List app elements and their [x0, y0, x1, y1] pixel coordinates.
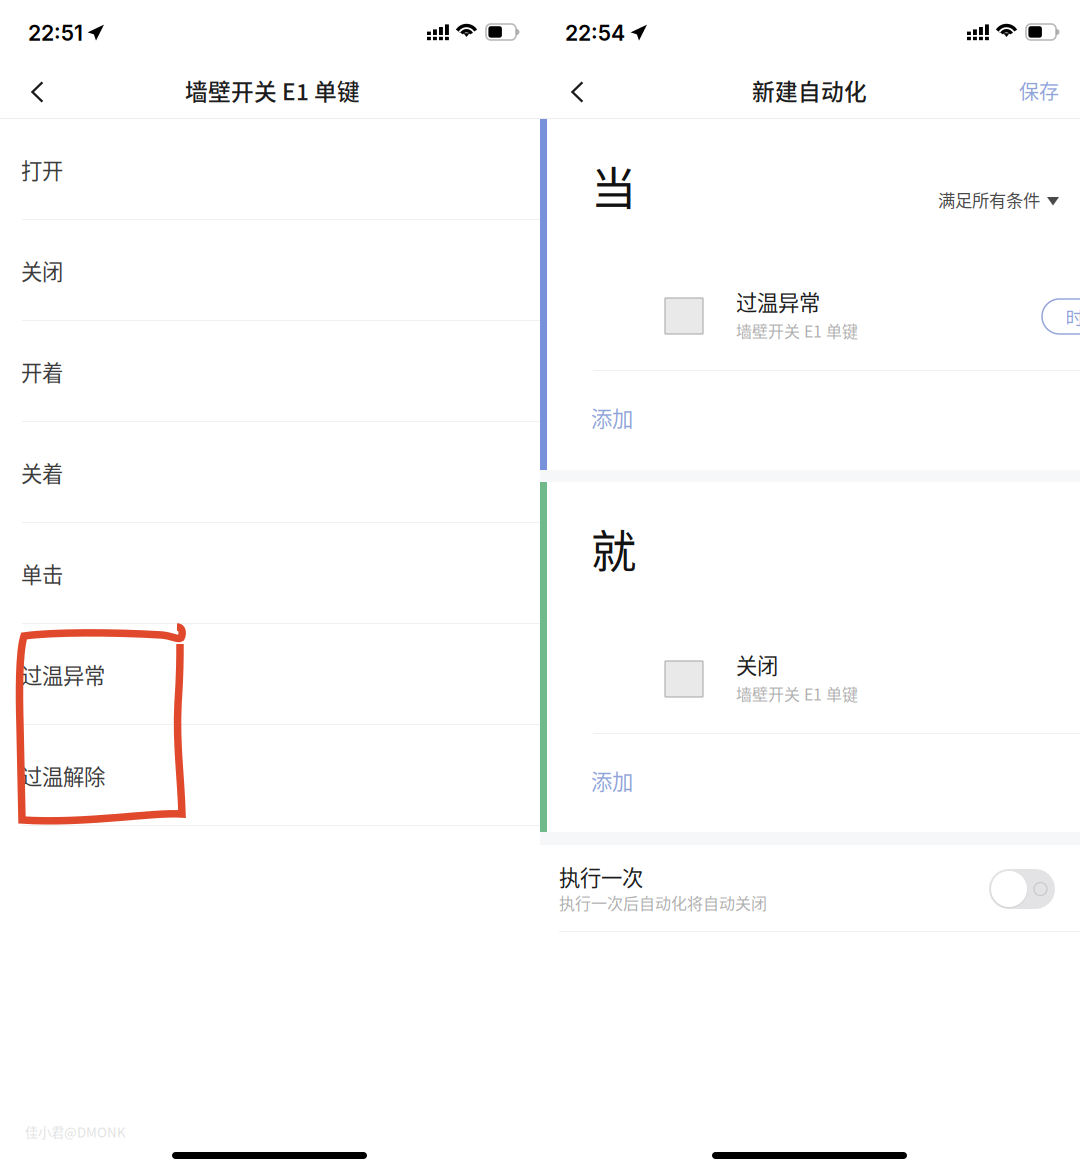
button[interactable]: 过温异常 — [610, 281, 1010, 345]
staticText: 保存 — [1019, 76, 1059, 105]
button[interactable]: 保存 — [1006, 62, 1068, 119]
button[interactable]: 单击 — [0, 523, 540, 624]
button[interactable]: 打开 — [0, 119, 540, 220]
staticText: 打开 — [21, 154, 63, 185]
button[interactable]: 开着 — [0, 321, 540, 422]
staticText: 关闭 — [21, 255, 63, 286]
staticText: 过温解除 — [21, 760, 105, 791]
staticText: 就 — [591, 516, 636, 582]
button[interactable]: 时段 — [1042, 299, 1080, 334]
button[interactable]: 过温解除 — [0, 725, 540, 826]
staticText: 新建自动化 — [752, 74, 867, 107]
staticText: 墙壁开关 E1 单键 — [736, 682, 858, 705]
staticText: 关着 — [21, 457, 63, 488]
staticText: 单击 — [21, 558, 63, 589]
staticText: 开着 — [21, 356, 63, 387]
staticText: 墙壁开关 E1 单键 — [185, 74, 360, 107]
staticText: 墙壁开关 E1 单键 — [736, 319, 858, 342]
staticText: 添加 — [591, 765, 633, 796]
staticText: 时段 — [1065, 303, 1080, 330]
button[interactable]: Back — [0, 62, 54, 119]
button[interactable]: 添加 — [540, 380, 1080, 446]
button[interactable]: 添加 — [540, 743, 1080, 809]
staticText: 过温异常 — [21, 659, 105, 690]
staticText: 关闭 — [736, 649, 778, 680]
staticText: 22:51 — [28, 20, 83, 46]
button[interactable]: Back — [540, 62, 594, 119]
button[interactable]: 关闭 — [0, 220, 540, 321]
staticText: 执行一次后自动化将自动关闭 — [559, 891, 767, 914]
staticText: 过温异常 — [736, 286, 820, 317]
button[interactable]: 关闭 — [610, 644, 1010, 708]
staticText: 佳小君@DMONK — [25, 1122, 126, 1141]
staticText: 22:54 — [565, 20, 625, 46]
staticText: 执行一次 — [559, 861, 643, 892]
staticText: 满足所有条件 — [938, 187, 1040, 212]
staticText: 添加 — [591, 402, 633, 433]
button[interactable]: 过温异常 — [0, 624, 540, 725]
button[interactable]: 满足所有条件 — [937, 177, 1077, 215]
button[interactable]: 关着 — [0, 422, 540, 523]
button[interactable]: Run once — [989, 869, 1055, 909]
staticText: 当 — [591, 153, 636, 219]
